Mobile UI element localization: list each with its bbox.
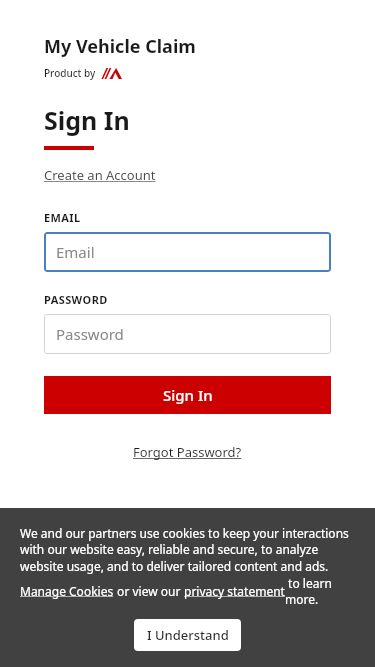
staticText: Manage Cookies — [20, 583, 114, 599]
button[interactable]: I Understand — [134, 619, 241, 651]
staticText: Email — [56, 242, 95, 262]
staticText: Sign In — [44, 103, 130, 137]
staticText: We and our partners use cookies to keep … — [20, 525, 361, 575]
button[interactable]: Create an Account — [44, 166, 156, 184]
button[interactable]: Password — [44, 314, 331, 354]
staticText: Sign In — [163, 385, 213, 405]
staticText: to learn more. — [285, 575, 361, 607]
button[interactable]: Sign In — [44, 376, 331, 414]
staticText: I Understand — [147, 626, 229, 644]
staticText: PASSWORD — [44, 292, 108, 307]
button[interactable]: Manage Cookies — [20, 583, 114, 599]
staticText: Forgot Password? — [133, 443, 242, 461]
button[interactable]: Forgot Password? — [133, 443, 242, 461]
staticText: My Vehicle Claim — [44, 34, 196, 59]
staticText: EMAIL — [44, 210, 81, 225]
staticText: Product by — [44, 66, 96, 80]
other: AA logo — [101, 68, 122, 79]
button[interactable]: privacy statement — [184, 583, 285, 599]
staticText: or view our — [114, 583, 184, 599]
staticText: Password — [56, 324, 124, 344]
staticText: Create an Account — [44, 166, 156, 184]
button[interactable]: Email — [44, 232, 331, 272]
staticText: privacy statement — [184, 583, 285, 599]
